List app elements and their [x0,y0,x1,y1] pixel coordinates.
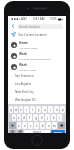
staticText: l [59,116,60,120]
staticText: s [18,116,20,120]
button[interactable]: k [51,114,56,121]
button[interactable]: j [45,114,50,121]
button[interactable]: g [33,114,38,121]
button[interactable]: c [28,122,33,129]
button[interactable]: e [19,106,23,113]
staticText: u [44,108,46,112]
button[interactable]: t [30,106,35,113]
button[interactable]: space [24,130,50,133]
button[interactable]: r [24,106,29,113]
staticText: Work [19,63,27,67]
staticText: m [53,124,56,128]
staticText: d [23,116,25,120]
staticText: j [47,116,48,120]
button[interactable]: Use Current Location [8,30,66,39]
button[interactable]: New York City [8,88,66,96]
button[interactable]: Numbers [9,130,16,133]
button[interactable]: i [48,106,53,113]
staticText: space [33,130,42,133]
staticText: k [53,116,55,120]
other: Back [11,24,15,28]
button[interactable]: Work [8,61,66,72]
staticText: i [50,108,51,112]
staticText: Washington DC [15,98,36,102]
staticText: 56 Santa Monica Boulevard [19,57,51,60]
staticText: 100% [50,17,57,21]
staticText: f [29,116,31,120]
staticText: AT&T [21,17,28,21]
button[interactable]: l [57,114,62,121]
button[interactable]: Backspace [58,122,65,129]
staticText: z [18,124,20,128]
button[interactable]: h [39,114,44,121]
button[interactable]: v [34,122,39,129]
button[interactable]: y [36,106,41,113]
button[interactable]: Search [51,130,65,133]
staticText: Home [19,41,28,45]
button[interactable]: Emoji [17,130,23,133]
button[interactable]: Back [8,22,66,30]
staticText: t [32,108,34,112]
button[interactable]: q [9,106,13,113]
staticText: Los Angeles [15,82,32,86]
staticText: Search [54,130,62,133]
staticText: New York City [15,90,34,94]
staticText: r [26,108,28,112]
staticText: p [62,108,64,112]
staticText: San Francisco [15,74,34,78]
staticText: w [15,108,18,112]
button[interactable]: b [40,122,45,129]
staticText: 400 Elm Street [19,68,36,71]
staticText: 1234 Elm Street [19,46,38,49]
button[interactable]: w [14,106,18,113]
staticText: q [10,108,12,112]
staticText: Work [19,52,27,56]
button[interactable]: a [12,114,16,121]
staticText: y [38,108,40,112]
staticText: a [13,116,15,120]
button[interactable]: s [17,114,21,121]
button[interactable]: z [17,122,21,129]
staticText: 9:41 AM [33,17,45,21]
staticText: b [42,124,44,128]
button[interactable]: Shift [9,122,16,129]
staticText: h [41,116,43,120]
staticText: v [36,124,38,128]
staticText: o [56,108,58,112]
staticText: Use Current Location [18,33,47,37]
staticText: x [24,124,26,128]
button[interactable]: Washington DC [8,96,66,104]
button[interactable]: n [46,122,51,129]
button[interactable]: Home [8,39,66,50]
staticText: n [48,124,50,128]
button[interactable]: x [22,122,27,129]
staticText: e [20,108,22,112]
button[interactable]: m [52,122,57,129]
button[interactable]: d [22,114,26,121]
button[interactable]: o [54,106,59,113]
staticText: c [30,124,32,128]
button[interactable]: p [60,106,65,113]
button[interactable]: San Francisco [8,72,66,80]
staticText: Search location [19,25,40,29]
button[interactable]: Search location [17,24,63,29]
button[interactable]: Work [8,50,66,61]
staticText: g [35,116,37,120]
button[interactable]: Los Angeles [8,80,66,88]
button[interactable]: f [27,114,32,121]
button[interactable]: u [42,106,47,113]
